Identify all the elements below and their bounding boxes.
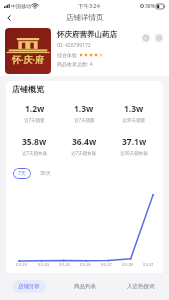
staticText: 7天 [18, 170, 26, 177]
staticText: 中国移动 [11, 3, 31, 9]
staticText: 38% [145, 3, 155, 10]
button[interactable]: Edit [154, 33, 164, 43]
staticText: 近7天销售额 [71, 150, 97, 156]
staticText: 店铺分析 [18, 283, 40, 290]
staticText: 商品收录总数: 4 [57, 61, 93, 68]
staticText: 36.4w [72, 136, 97, 148]
staticText: 近7天销量 [74, 117, 95, 123]
staticText: 店铺概览 [12, 84, 44, 94]
staticText: 近7天销售额 [22, 150, 48, 156]
staticText: 03-26 [80, 262, 91, 268]
staticText: 03-21 [143, 262, 154, 268]
staticText: 1.3w [124, 103, 144, 115]
staticText: 35.8w [22, 136, 47, 148]
staticText: 03-23 [16, 262, 27, 268]
button[interactable]: 30天 [35, 168, 56, 179]
staticText: 03-27 [101, 262, 112, 268]
staticText: ID: 426799172 [57, 42, 91, 49]
button[interactable]: 商品列表 [57, 273, 113, 300]
button[interactable]: Back [2, 12, 15, 23]
staticText: 近30天销量 [122, 117, 146, 123]
staticText: 37.1w [122, 136, 147, 148]
button[interactable]: 7天 [13, 168, 31, 179]
staticText: 1.2w [25, 103, 45, 115]
button[interactable]: 店铺分析 [0, 273, 57, 300]
staticText: 近7天销量 [24, 117, 45, 123]
staticText: 店铺详情页 [66, 13, 104, 22]
staticText: 下午3:24 [78, 2, 100, 10]
staticText: 近30天销售额 [120, 150, 148, 156]
button[interactable]: 入店热搜词 [113, 273, 169, 300]
staticText: 商品列表 [74, 283, 96, 290]
staticText: 03-28 [122, 262, 133, 268]
staticText: 入店热搜词 [127, 283, 155, 290]
staticText: 怀庆府营养山药店 [57, 30, 117, 39]
button[interactable]: History [141, 33, 151, 43]
staticText: 30天 [40, 170, 51, 177]
staticText: 1.3w [74, 103, 94, 115]
staticText: 综合体验 [57, 52, 77, 58]
staticText: 03-24 [38, 262, 49, 268]
staticText: 03-25 [59, 262, 70, 268]
staticText: 怀·庆·府 [12, 53, 45, 65]
